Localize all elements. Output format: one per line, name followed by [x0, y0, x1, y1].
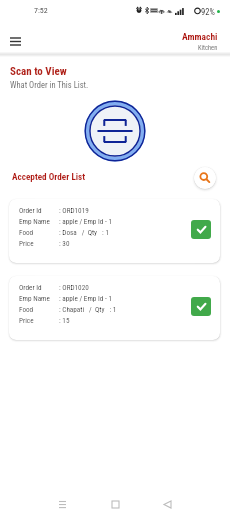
button[interactable]: Home — [103, 492, 127, 512]
button[interactable]: Search orders — [194, 167, 216, 189]
staticText: Emp Name — [19, 294, 50, 302]
staticText: : apple / Emp Id - 1 — [59, 217, 113, 225]
staticText: Accepted Order List — [12, 171, 86, 182]
button[interactable]: Open navigation menu — [4, 30, 26, 52]
staticText: Emp Name — [19, 217, 50, 225]
staticText: Order Id — [19, 283, 42, 291]
button[interactable]: Back — [155, 492, 179, 512]
button[interactable]: Recent apps — [50, 492, 74, 512]
staticText: Ammachi — [182, 31, 218, 42]
staticText: Kitchen — [198, 44, 218, 52]
button[interactable]: Order Id — [9, 199, 220, 263]
staticText: : 30 — [59, 239, 70, 247]
staticText: 92% — [201, 7, 215, 17]
staticText: : apple / Emp Id - 1 — [59, 294, 113, 302]
staticText: Order Id — [19, 206, 42, 214]
staticText: 7:52 — [34, 6, 48, 15]
staticText: What Order in This List. — [10, 80, 89, 90]
staticText: : ORD1020 — [59, 283, 89, 291]
button[interactable]: Order accepted — [191, 297, 211, 316]
staticText: : 15 — [59, 316, 70, 324]
staticText: Price — [19, 316, 34, 324]
staticText: : Chapati / Qty : 1 — [59, 305, 117, 313]
button[interactable]: Order Id — [9, 276, 220, 340]
staticText: : Dosa / Qty : 1 — [59, 228, 109, 236]
staticText: Food — [19, 228, 34, 236]
button[interactable]: Scan QR code — [84, 100, 146, 162]
staticText: Scan to View — [10, 65, 67, 78]
staticText: Food — [19, 305, 34, 313]
staticText: : ORD1019 — [59, 206, 89, 214]
staticText: Price — [19, 239, 34, 247]
button[interactable]: Order accepted — [191, 220, 211, 239]
